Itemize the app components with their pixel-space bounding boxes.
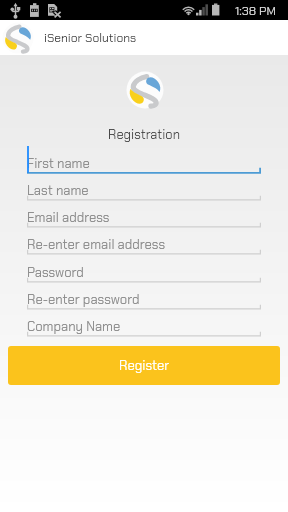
staticText: 1:38 PM (235, 3, 276, 19)
button[interactable]: Re-enter email address (27, 228, 261, 255)
staticText: Re-enter email address (27, 236, 166, 253)
button[interactable]: Register (8, 346, 280, 385)
button[interactable]: Email address (27, 201, 261, 228)
staticText: Password (27, 264, 84, 281)
button[interactable]: Password (27, 256, 261, 283)
staticText: Registration (0, 126, 288, 143)
button[interactable]: Last name (27, 174, 261, 201)
staticText: Company Name (27, 318, 121, 335)
staticText: Email address (27, 209, 110, 226)
staticText: iSenior Solutions (44, 30, 137, 46)
button[interactable]: First name (27, 147, 261, 174)
button[interactable]: Company Name (27, 310, 261, 337)
staticText: Last name (27, 182, 89, 199)
staticText: First name (27, 155, 90, 172)
button[interactable]: Re-enter password (27, 283, 261, 310)
staticText: Register (119, 357, 170, 374)
staticText: Re-enter password (27, 291, 140, 308)
